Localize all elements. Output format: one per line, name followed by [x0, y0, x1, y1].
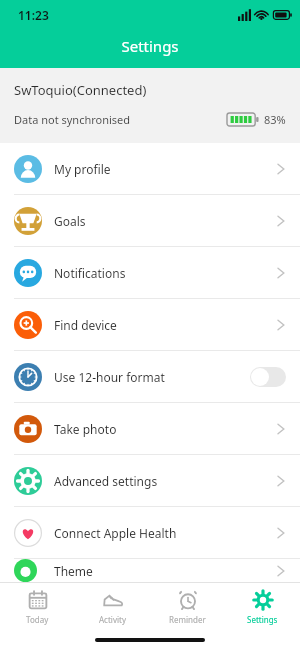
button[interactable]: My profile: [0, 143, 300, 194]
button[interactable]: Take photo: [0, 403, 300, 454]
button[interactable]: Use 12-hour format toggle: [250, 367, 286, 387]
button[interactable]: Today: [0, 583, 75, 631]
button[interactable]: Find device: [0, 299, 300, 350]
staticText: Use 12-hour format: [54, 369, 165, 385]
button[interactable]: Reminder: [150, 583, 225, 631]
button[interactable]: Settings: [225, 583, 300, 631]
staticText: Reminder: [169, 614, 206, 625]
staticText: Find device: [54, 317, 117, 333]
staticText: Goals: [54, 213, 86, 229]
staticText: Connect Apple Health: [54, 525, 177, 541]
staticText: Notifications: [54, 265, 126, 281]
staticText: Take photo: [54, 421, 117, 437]
button[interactable]: Advanced settings: [0, 455, 300, 506]
staticText: 11:23: [18, 7, 49, 23]
button[interactable]: Goals: [0, 195, 300, 246]
staticText: Activity: [99, 614, 126, 625]
staticText: Data not synchronised: [14, 112, 131, 127]
button[interactable]: Use 12-hour format: [0, 351, 300, 402]
staticText: Theme: [54, 563, 93, 579]
staticText: SwToquio(Connected): [14, 81, 147, 99]
staticText: Advanced settings: [54, 473, 158, 489]
staticText: Settings: [247, 614, 278, 625]
button[interactable]: Theme: [0, 559, 300, 582]
staticText: 83%: [264, 112, 286, 127]
staticText: My profile: [54, 161, 111, 177]
staticText: Today: [26, 614, 49, 625]
button[interactable]: Notifications: [0, 247, 300, 298]
button[interactable]: Activity: [75, 583, 150, 631]
button[interactable]: Connect Apple Health: [0, 507, 300, 558]
staticText: Settings: [0, 36, 300, 56]
